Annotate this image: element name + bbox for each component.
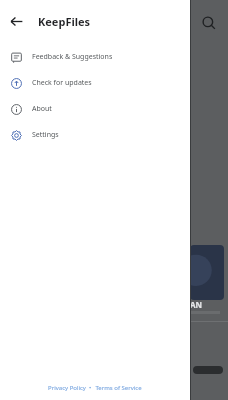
staticText: • bbox=[86, 384, 95, 392]
button[interactable]: Check for updates bbox=[0, 70, 190, 96]
staticText: Settings bbox=[32, 130, 59, 140]
button[interactable]: Search bbox=[196, 10, 222, 36]
staticText: Feedback & Suggestions bbox=[32, 52, 113, 62]
staticText: Terms of Service bbox=[95, 384, 142, 392]
button[interactable]: Feedback & Suggestions bbox=[0, 44, 190, 70]
staticText: Privacy Policy bbox=[48, 384, 86, 392]
staticText: Check for updates bbox=[32, 78, 92, 88]
button[interactable]: Privacy Policy bbox=[48, 384, 86, 392]
button[interactable]: About bbox=[0, 96, 190, 122]
staticText: KeepFiles bbox=[38, 14, 91, 29]
staticText: About bbox=[32, 104, 52, 114]
button[interactable]: Back bbox=[5, 10, 27, 32]
button[interactable]: Settings bbox=[0, 122, 190, 148]
staticText: AN bbox=[190, 299, 203, 310]
button[interactable]: Terms of Service bbox=[95, 384, 142, 392]
